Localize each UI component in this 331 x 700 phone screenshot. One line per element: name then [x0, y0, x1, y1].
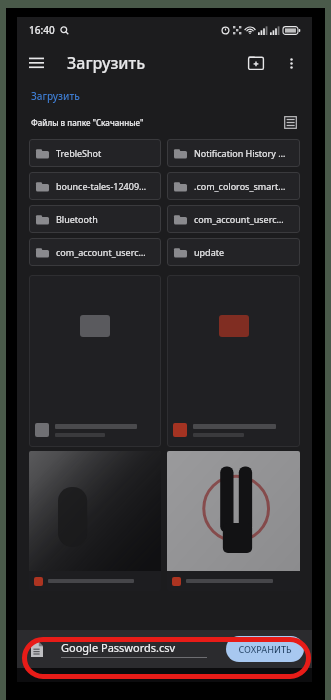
- button[interactable]: File type: [27, 639, 47, 659]
- button[interactable]: bounce-tales-12409…: [29, 172, 161, 200]
- button[interactable]: [167, 451, 300, 591]
- button[interactable]: [29, 451, 161, 591]
- staticText: Notification History …: [194, 147, 286, 159]
- staticText: СОХРАНИТЬ: [238, 643, 292, 655]
- button[interactable]: Notification History …: [167, 139, 300, 167]
- staticText: update: [194, 246, 225, 258]
- button[interactable]: More options: [274, 46, 308, 80]
- button[interactable]: com_account_userc…: [167, 205, 300, 233]
- button[interactable]: СОХРАНИТЬ: [226, 636, 304, 662]
- staticText: Загрузить: [67, 52, 146, 74]
- staticText: Google Passwords.csv: [61, 640, 176, 655]
- button[interactable]: [29, 275, 161, 447]
- button[interactable]: com_account_userc…: [29, 238, 161, 266]
- staticText: com_account_userc…: [56, 246, 146, 258]
- button[interactable]: TrebleShot: [29, 139, 161, 167]
- staticText: bounce-tales-12409…: [56, 180, 147, 192]
- button[interactable]: Open navigation menu: [17, 44, 55, 82]
- button[interactable]: Bluetooth: [29, 205, 161, 233]
- button[interactable]: Switch view: [278, 110, 302, 134]
- staticText: .com_coloros_smart…: [194, 180, 286, 192]
- staticText: Bluetooth: [56, 213, 98, 225]
- button[interactable]: [167, 275, 300, 447]
- staticText: com_account_userc…: [194, 213, 284, 225]
- staticText: 16:40: [29, 23, 55, 37]
- button[interactable]: Загрузить: [31, 89, 80, 103]
- staticText: Загрузить: [31, 89, 80, 103]
- button[interactable]: Create new folder: [238, 45, 274, 81]
- button[interactable]: .com_coloros_smart…: [167, 172, 300, 200]
- button[interactable]: update: [167, 238, 300, 266]
- staticText: TrebleShot: [56, 147, 102, 159]
- staticText: Файлы в папке "Скачанные": [31, 117, 144, 128]
